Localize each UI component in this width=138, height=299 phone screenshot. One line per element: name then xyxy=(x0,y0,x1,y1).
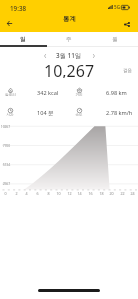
staticText: 주 xyxy=(66,36,72,43)
button[interactable]: 주 xyxy=(46,33,92,45)
staticText: 18 xyxy=(99,191,104,196)
staticText: 2.78 km/h xyxy=(106,109,133,117)
staticText: 월 xyxy=(112,36,118,43)
staticText: 20 xyxy=(109,191,114,196)
button[interactable]: 일 xyxy=(0,33,46,45)
staticText: 12 xyxy=(67,191,72,196)
staticText: 14 xyxy=(77,191,82,196)
staticText: 6 xyxy=(36,191,39,196)
staticText: 4 xyxy=(25,191,28,196)
staticText: 5G xyxy=(114,4,120,10)
staticText: 3월 11일 xyxy=(56,51,82,60)
staticText: 2 xyxy=(15,191,18,196)
button[interactable]: Back xyxy=(0,14,18,32)
staticText: 10267 xyxy=(0,124,10,129)
staticText: 104 분 xyxy=(37,109,54,117)
staticText: 24 xyxy=(130,191,135,196)
staticText: 6.98 km xyxy=(106,89,127,97)
staticText: 속도 xyxy=(75,113,83,117)
button[interactable]: 월 xyxy=(92,33,138,45)
staticText: 통계 xyxy=(63,15,76,23)
button[interactable]: 속도 xyxy=(69,106,138,124)
staticText: 10,267 xyxy=(44,60,95,78)
button[interactable]: 거리 xyxy=(69,86,138,104)
button[interactable]: 칼로리 xyxy=(0,86,69,104)
button[interactable]: 시간 xyxy=(0,106,69,124)
staticText: 시간 xyxy=(6,113,14,117)
staticText: 걸음 xyxy=(123,68,133,74)
staticText: 0 xyxy=(4,191,7,196)
button[interactable]: Next day xyxy=(89,51,98,60)
staticText: 5134 xyxy=(2,162,10,167)
staticText: 거리 xyxy=(75,93,83,97)
staticText: 일 xyxy=(20,36,26,43)
staticText: 8 xyxy=(47,191,50,196)
staticText: 칼로리 xyxy=(5,93,16,97)
staticText: 2567 xyxy=(2,181,10,186)
staticText: 342 kcal xyxy=(37,89,59,97)
staticText: 10 xyxy=(56,191,61,196)
staticText: 19:38 xyxy=(10,4,27,13)
staticText: 7700 xyxy=(2,143,10,148)
button[interactable]: Previous day xyxy=(40,51,49,60)
staticText: 16 xyxy=(88,191,93,196)
staticText: 22 xyxy=(120,191,125,196)
button[interactable]: Share xyxy=(118,15,136,33)
